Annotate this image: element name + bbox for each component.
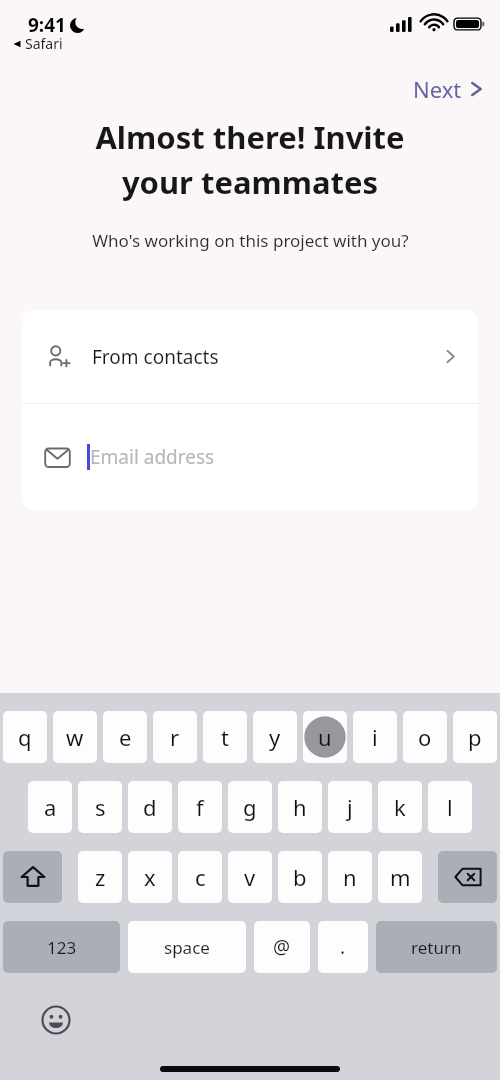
staticText: Safari [25,34,63,53]
staticText: u [318,722,332,752]
staticText: b [293,862,307,892]
staticText: y [269,722,281,752]
button[interactable]: b [278,851,322,903]
staticText: @ [273,934,291,960]
button[interactable]: . [318,921,368,973]
button[interactable]: o [403,711,447,763]
staticText: Who's working on this project with you? [92,229,409,252]
staticText: From contacts [92,344,219,370]
staticText: return [411,936,462,959]
staticText: z [95,862,106,892]
staticText: t [221,722,229,752]
button[interactable]: j [328,781,372,833]
staticText: j [347,792,353,822]
staticText: space [164,936,210,959]
button[interactable]: s [78,781,122,833]
button[interactable]: p [453,711,497,763]
staticText: q [18,722,32,752]
button[interactable]: c [178,851,222,903]
button[interactable]: f [178,781,222,833]
button[interactable]: k [378,781,422,833]
button[interactable]: @ [254,921,310,973]
button[interactable]: Next [397,68,500,110]
staticText: a [44,792,57,822]
staticText: x [144,862,156,892]
button[interactable]: q [3,711,47,763]
staticText: v [244,862,256,892]
button[interactable]: d [128,781,172,833]
button[interactable]: Email address [22,404,478,510]
button[interactable]: w [53,711,97,763]
staticText: i [372,722,378,752]
button[interactable]: r [153,711,197,763]
button[interactable]: Shift [3,851,62,903]
button[interactable]: a [28,781,72,833]
staticText: e [119,722,132,752]
staticText: h [293,792,307,822]
staticText: f [196,792,204,822]
button[interactable]: v [228,851,272,903]
button[interactable]: u [303,711,347,763]
button[interactable]: l [428,781,472,833]
staticText: Next [413,74,462,104]
button[interactable]: z [78,851,122,903]
staticText: g [243,792,257,822]
staticText: 123 [47,936,77,959]
staticText: n [343,862,357,892]
staticText: k [394,792,406,822]
staticText: . [340,934,346,960]
button[interactable]: h [278,781,322,833]
button[interactable]: m [378,851,422,903]
button[interactable]: 123 [3,921,120,973]
staticText: m [390,862,411,892]
button[interactable]: From contacts [22,310,478,403]
button[interactable]: y [253,711,297,763]
button[interactable]: Emoji keyboard [34,998,78,1042]
staticText: 9:41 [28,12,66,38]
button[interactable]: space [128,921,246,973]
button[interactable]: x [128,851,172,903]
staticText: l [447,792,453,822]
staticText: w [66,722,84,752]
staticText: p [468,722,482,752]
staticText: Almost there! Invite your teammates [95,116,405,203]
staticText: c [195,862,206,892]
button[interactable]: t [203,711,247,763]
button[interactable]: return [376,921,497,973]
staticText: r [170,722,180,752]
staticText: d [143,792,157,822]
button[interactable]: g [228,781,272,833]
staticText: Email address [90,444,215,470]
staticText: s [95,792,106,822]
button[interactable]: n [328,851,372,903]
button[interactable]: i [353,711,397,763]
button[interactable]: Backspace [438,851,497,903]
staticText: o [418,722,432,752]
button[interactable]: e [103,711,147,763]
